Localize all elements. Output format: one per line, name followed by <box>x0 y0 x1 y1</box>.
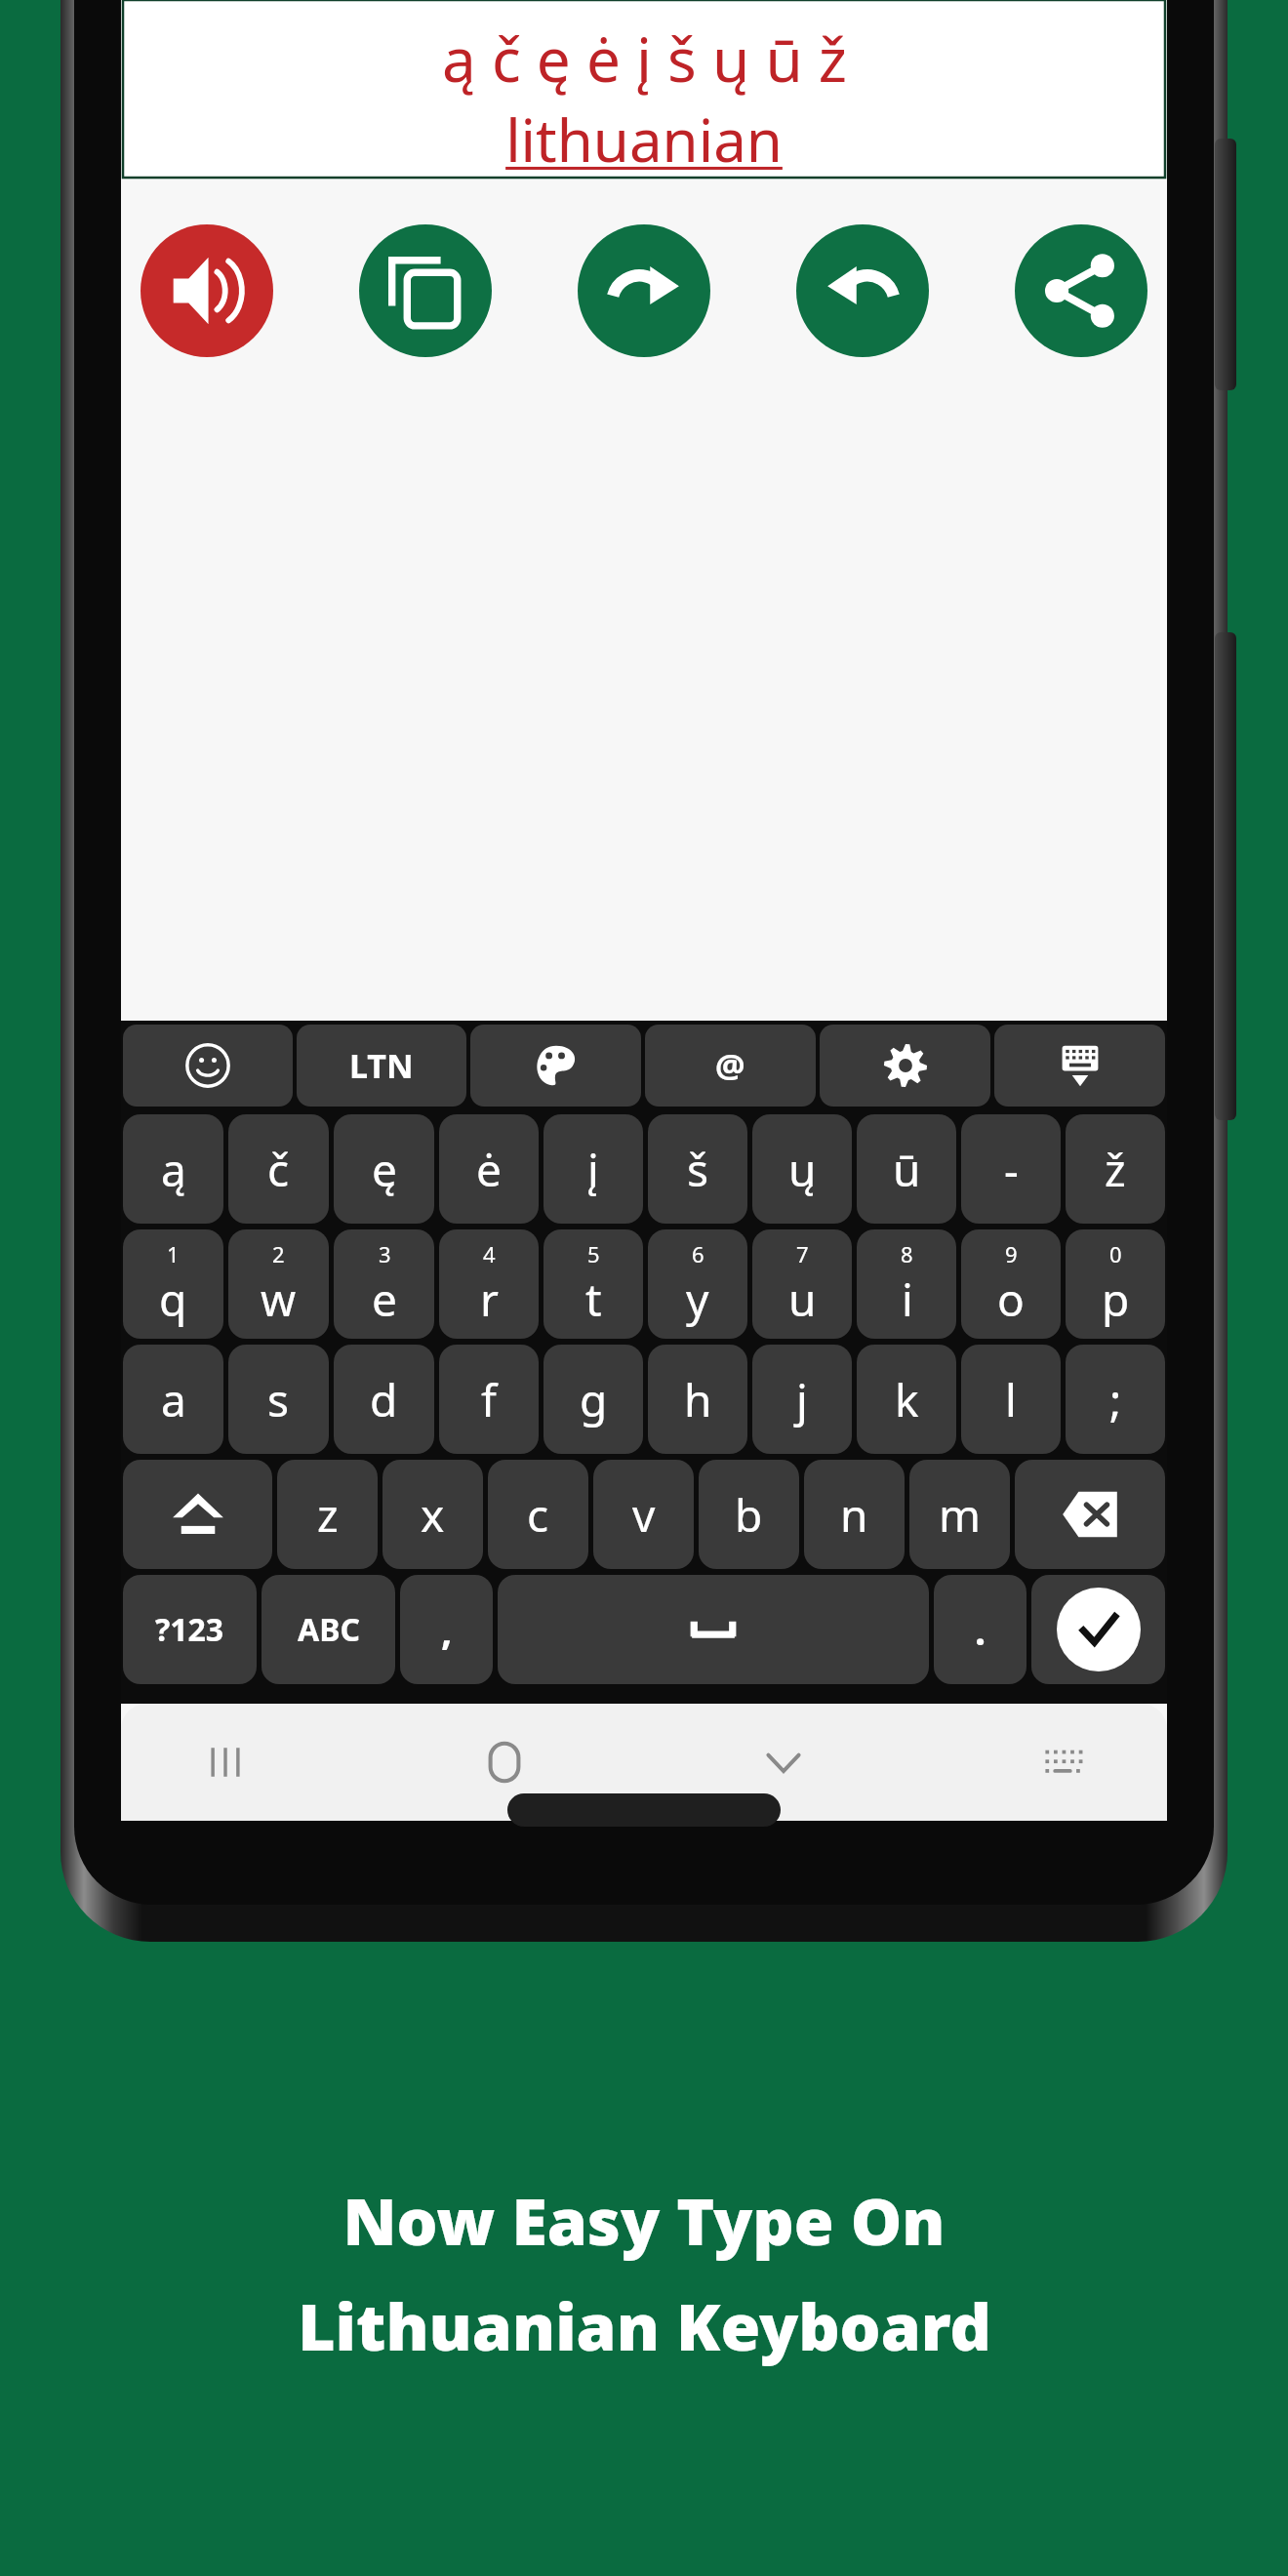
button[interactable]: Speak <box>141 224 273 357</box>
staticText: ą <box>161 1139 186 1200</box>
button[interactable]: ?123 <box>123 1575 257 1684</box>
button[interactable]: f <box>439 1345 539 1454</box>
staticText: w <box>261 1268 297 1330</box>
staticText: a <box>161 1369 186 1430</box>
button[interactable]: Theme <box>470 1025 641 1107</box>
button[interactable]: LTN <box>297 1025 466 1107</box>
staticText: g <box>580 1369 608 1430</box>
button[interactable]: @ <box>645 1025 816 1107</box>
staticText: o <box>997 1268 1025 1330</box>
staticText: m <box>939 1484 982 1546</box>
button[interactable]: h <box>648 1345 747 1454</box>
staticText: - <box>1004 1139 1019 1200</box>
staticText: h <box>684 1369 712 1430</box>
staticText: j <box>796 1369 808 1430</box>
button[interactable]: v <box>593 1460 694 1569</box>
staticText: k <box>895 1369 919 1430</box>
button[interactable]: ž <box>1066 1114 1165 1224</box>
staticText: p <box>1102 1268 1130 1330</box>
button[interactable]: l <box>961 1345 1061 1454</box>
button[interactable]: 3 <box>334 1229 434 1339</box>
button[interactable]: Settings <box>820 1025 990 1107</box>
button[interactable]: ū <box>857 1114 956 1224</box>
staticText: ; <box>1109 1369 1122 1430</box>
button[interactable]: s <box>228 1345 329 1454</box>
staticText: 3 <box>379 1239 391 1268</box>
button[interactable]: Backspace <box>1015 1460 1165 1569</box>
button[interactable]: c <box>488 1460 588 1569</box>
button[interactable]: g <box>543 1345 643 1454</box>
button[interactable]: š <box>648 1114 747 1224</box>
staticText: , <box>441 1603 453 1656</box>
staticText: 6 <box>692 1239 704 1268</box>
staticText: lithuanian <box>505 100 783 178</box>
button[interactable]: 7 <box>752 1229 852 1339</box>
staticText: 8 <box>901 1239 913 1268</box>
button[interactable]: Redo <box>578 224 710 357</box>
button[interactable]: ė <box>439 1114 539 1224</box>
staticText: 2 <box>272 1239 285 1268</box>
button[interactable]: į <box>543 1114 643 1224</box>
button[interactable]: k <box>857 1345 956 1454</box>
button[interactable]: Undo <box>796 224 929 357</box>
staticText: @ <box>715 1043 745 1088</box>
button[interactable]: b <box>699 1460 799 1569</box>
button[interactable]: 9 <box>961 1229 1061 1339</box>
staticText: ž <box>1105 1139 1126 1200</box>
button[interactable]: , <box>400 1575 493 1684</box>
button[interactable]: a <box>123 1345 223 1454</box>
button[interactable]: 0 <box>1066 1229 1165 1339</box>
button[interactable]: 2 <box>228 1229 329 1339</box>
button[interactable]: Back <box>730 1709 837 1816</box>
button[interactable]: - <box>961 1114 1061 1224</box>
staticText: š <box>687 1139 709 1200</box>
button[interactable]: m <box>909 1460 1010 1569</box>
staticText: ?123 <box>155 1608 224 1651</box>
button[interactable]: 4 <box>439 1229 539 1339</box>
button[interactable]: č <box>228 1114 329 1224</box>
staticText: c <box>527 1484 549 1546</box>
button[interactable]: . <box>934 1575 1026 1684</box>
staticText: d <box>370 1369 398 1430</box>
staticText: t <box>585 1268 602 1330</box>
button[interactable]: Space <box>498 1575 929 1684</box>
button[interactable]: j <box>752 1345 852 1454</box>
button[interactable]: ; <box>1066 1345 1165 1454</box>
button[interactable]: Copy <box>359 224 492 357</box>
staticText: l <box>1005 1369 1017 1430</box>
button[interactable]: Keyboard <box>1009 1709 1116 1816</box>
staticText: LTN <box>349 1043 414 1088</box>
staticText: i <box>902 1268 913 1330</box>
staticText: Lithuanian Keyboard <box>298 2281 991 2369</box>
button[interactable]: Share <box>1015 224 1147 357</box>
button[interactable]: Hide keyboard <box>994 1025 1165 1107</box>
button[interactable]: z <box>277 1460 378 1569</box>
button[interactable]: ų <box>752 1114 852 1224</box>
button[interactable]: Recents <box>172 1709 279 1816</box>
staticText: ABC <box>298 1608 360 1651</box>
button[interactable]: Shift <box>123 1460 272 1569</box>
button[interactable]: 1 <box>123 1229 223 1339</box>
button[interactable]: Emoji <box>123 1025 293 1107</box>
button[interactable]: 8 <box>857 1229 956 1339</box>
button[interactable]: Home <box>451 1709 558 1816</box>
staticText: r <box>480 1268 499 1330</box>
button[interactable]: ą <box>123 1114 223 1224</box>
button[interactable]: d <box>334 1345 434 1454</box>
button[interactable]: Enter <box>1031 1575 1165 1684</box>
button[interactable]: x <box>382 1460 483 1569</box>
button[interactable]: ę <box>334 1114 434 1224</box>
staticText: 0 <box>1109 1239 1122 1268</box>
staticText: 5 <box>587 1239 600 1268</box>
button[interactable]: n <box>804 1460 905 1569</box>
staticText: 4 <box>483 1239 496 1268</box>
staticText: y <box>686 1268 709 1330</box>
button[interactable]: 5 <box>543 1229 643 1339</box>
staticText: n <box>840 1484 868 1546</box>
button[interactable]: 6 <box>648 1229 747 1339</box>
staticText: f <box>481 1369 497 1430</box>
button[interactable]: ą č ę ė į š ų ū ž <box>123 0 1165 178</box>
staticText: 1 <box>167 1239 180 1268</box>
button[interactable]: ABC <box>262 1575 395 1684</box>
staticText: ų <box>788 1139 817 1200</box>
